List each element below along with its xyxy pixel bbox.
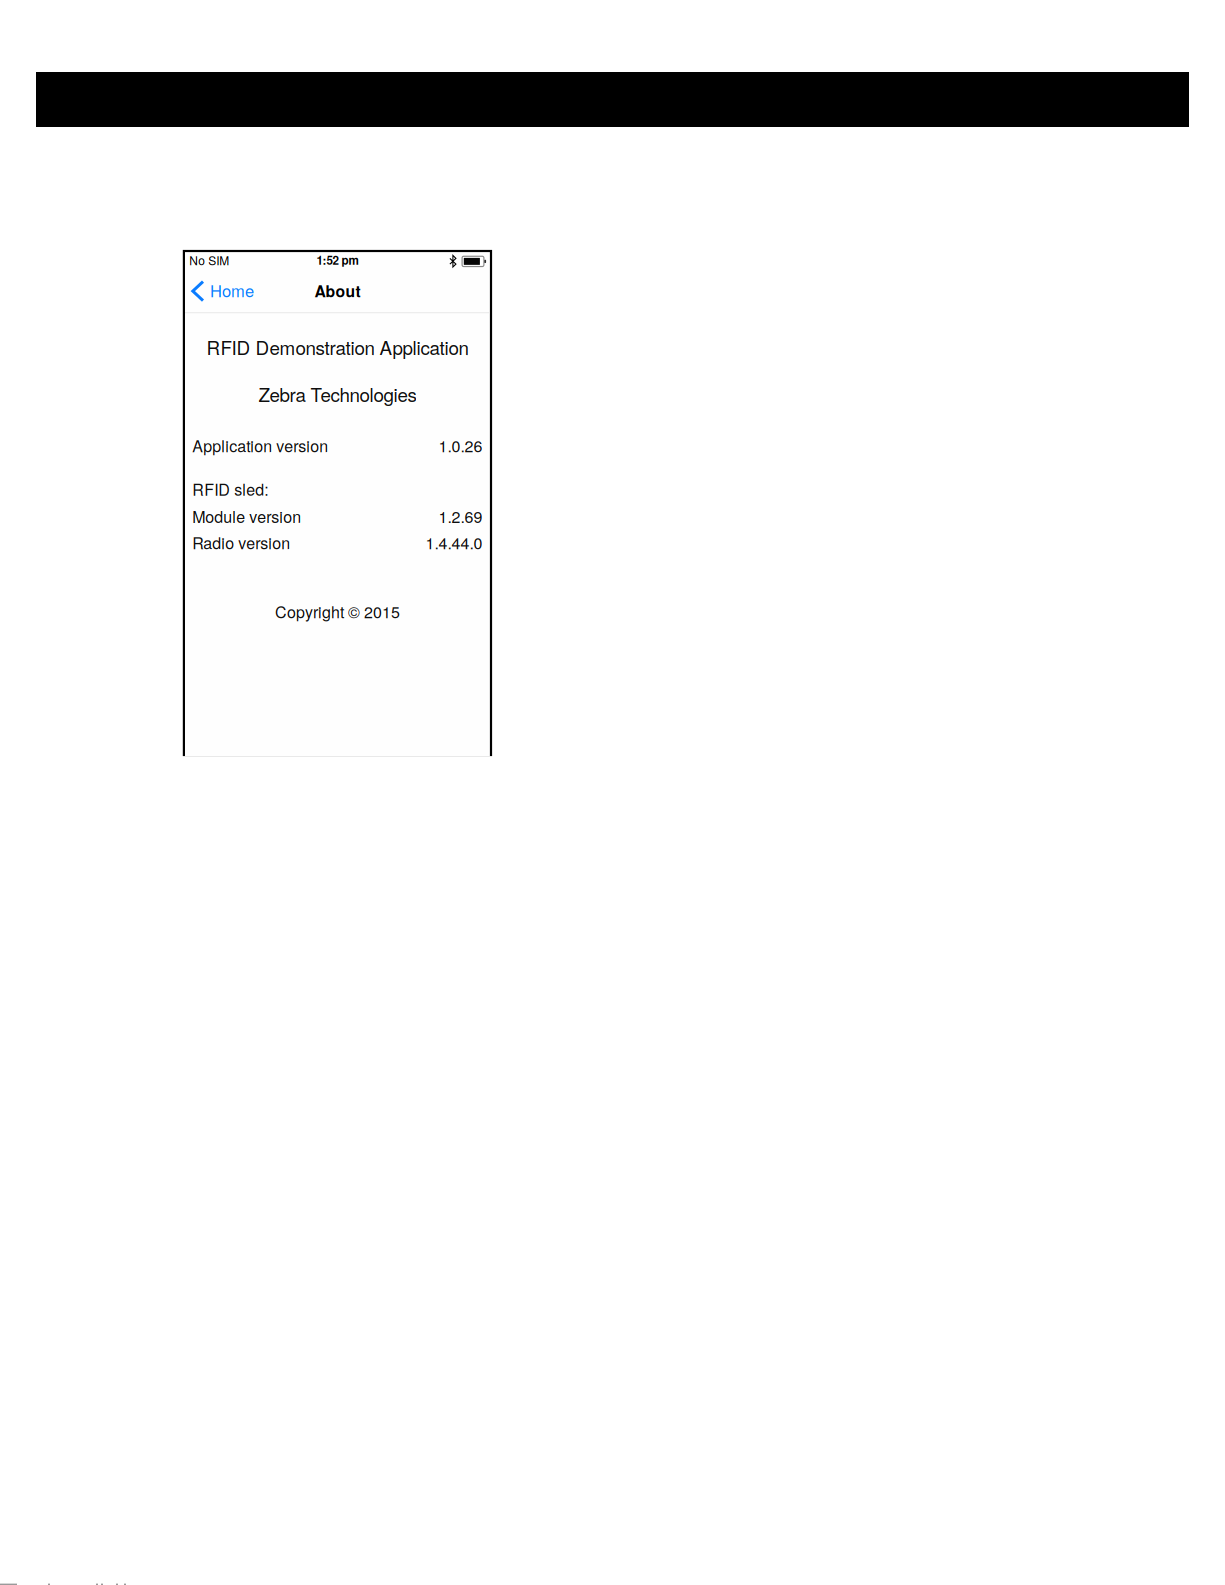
staticText: No SIM (189, 251, 229, 269)
staticText: 1.4.44.0 (426, 531, 483, 554)
staticText: Radio version (192, 531, 290, 554)
staticText: 1.2.69 (439, 505, 483, 527)
staticText: RFID Demonstration Application (206, 333, 468, 360)
button[interactable]: Back to Home (185, 271, 262, 309)
staticText: Copyright © 2015 (275, 600, 400, 623)
staticText: 1.0.26 (439, 434, 483, 457)
staticText: About (314, 280, 360, 302)
staticText: Application version (192, 434, 328, 457)
staticText: Module version (192, 505, 301, 527)
staticText: Home (210, 278, 254, 302)
staticText: RFID sled: (192, 477, 268, 500)
staticText: Zebra Technologies (258, 380, 416, 407)
staticText: 1:52 pm (316, 252, 358, 268)
